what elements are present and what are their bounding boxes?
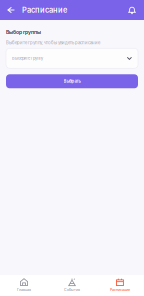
button[interactable]: События xyxy=(48,274,96,296)
button[interactable]: Главная xyxy=(0,274,48,296)
staticText: Выбор группы xyxy=(6,29,41,35)
button[interactable]: Back xyxy=(0,0,22,20)
button[interactable]: Выбрать xyxy=(6,74,138,88)
button[interactable]: Расписание xyxy=(96,274,144,296)
staticText: События xyxy=(64,288,80,292)
staticText: Выбрать xyxy=(63,79,80,84)
button[interactable]: Notifications xyxy=(120,0,144,20)
staticText: Главная xyxy=(17,288,31,292)
staticText: Расписание xyxy=(22,5,67,14)
staticText: Выберите группу xyxy=(12,56,43,61)
button[interactable]: Выберите группу xyxy=(6,48,138,68)
staticText: Расписание xyxy=(110,288,130,292)
staticText: Выберите группу, чтобы увидеть расписани… xyxy=(6,40,100,45)
